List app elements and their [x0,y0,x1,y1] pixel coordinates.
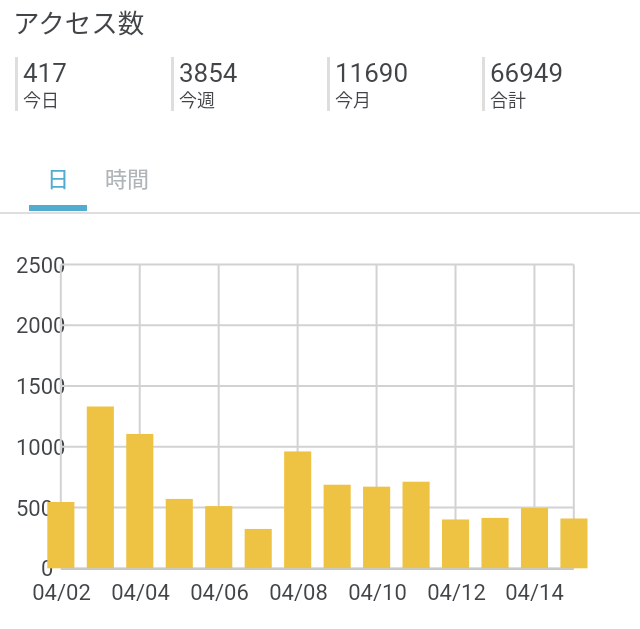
staticText: 04/14 [505,580,564,606]
button[interactable]: 時間タブ [85,147,169,212]
staticText: 今日 [23,86,59,112]
button[interactable]: 11690 [327,57,477,111]
button[interactable]: 66949 [482,57,632,111]
staticText: 11690 [335,58,409,88]
staticText: 1000 [16,435,66,461]
staticText: 66949 [490,58,564,88]
staticText: 合計 [490,86,526,112]
staticText: 日 [47,161,70,193]
staticText: 04/10 [348,580,407,606]
staticText: 417 [23,58,67,88]
staticText: 1500 [16,374,66,400]
staticText: 04/12 [427,580,486,606]
staticText: 04/08 [269,580,328,606]
button[interactable]: 日タブ [16,147,100,212]
staticText: 今月 [335,86,371,112]
staticText: 2000 [16,313,66,339]
button[interactable]: 417 [15,57,165,111]
staticText: 時間 [105,161,150,193]
staticText: 04/06 [190,580,249,606]
staticText: 04/04 [111,580,170,606]
staticText: 500 [16,496,54,522]
staticText: アクセス数 [13,2,145,40]
staticText: 2500 [16,253,66,279]
button[interactable]: 3854 [171,57,321,111]
staticText: 04/02 [32,580,91,606]
staticText: 0 [41,556,54,582]
staticText: 今週 [179,86,215,112]
staticText: 3854 [179,58,238,88]
